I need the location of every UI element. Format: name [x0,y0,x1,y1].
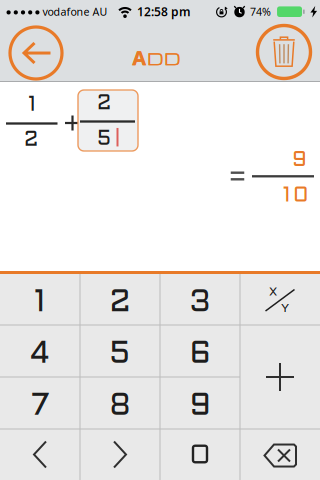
staticText: 7 [31,393,49,421]
button[interactable]: 8 [80,377,159,428]
staticText: 6 [189,341,210,369]
staticText: 9 [189,393,210,421]
button[interactable]: First fraction 1 over 2 [2,92,62,154]
staticText: Y [281,303,289,315]
staticText: 10 [283,186,309,206]
button[interactable]: 5 [80,325,159,376]
staticText: 1 [34,289,45,318]
button[interactable]: 7 [0,377,79,428]
staticText: 2 [24,131,38,150]
staticText: 5 [97,130,110,149]
button[interactable]: 2 [80,274,159,325]
button[interactable]: Delete [255,23,312,80]
staticText: 2 [109,289,130,318]
staticText: 2 [97,94,111,113]
staticText: 3 [190,289,210,318]
staticText: 8 [109,393,130,421]
button[interactable]: Move right [80,429,159,480]
staticText: ADD [133,44,181,71]
button[interactable]: 6 [160,325,239,376]
button[interactable]: Fraction [240,274,319,325]
button[interactable]: Move left [0,429,79,480]
button[interactable]: Back [8,25,64,81]
staticText: 5 [110,341,130,369]
staticText: 74% [250,4,271,19]
staticText: 1 [28,96,35,115]
button[interactable]: Second fraction 2 over 5 [78,90,138,151]
button[interactable]: Plus [240,325,319,428]
staticText: ADD [132,44,180,71]
button[interactable]: 9 [160,377,239,428]
button[interactable]: 1 [0,274,79,325]
staticText: 4 [30,341,49,369]
button[interactable]: Zero [160,429,239,480]
staticText: 12:58 pm [137,3,191,19]
staticText: X [269,287,277,298]
staticText: vodafone AU [42,4,107,19]
button[interactable]: 4 [0,325,79,376]
button[interactable]: 3 [160,274,239,325]
button[interactable]: Backspace [240,429,319,480]
staticText: 9 [292,151,307,170]
